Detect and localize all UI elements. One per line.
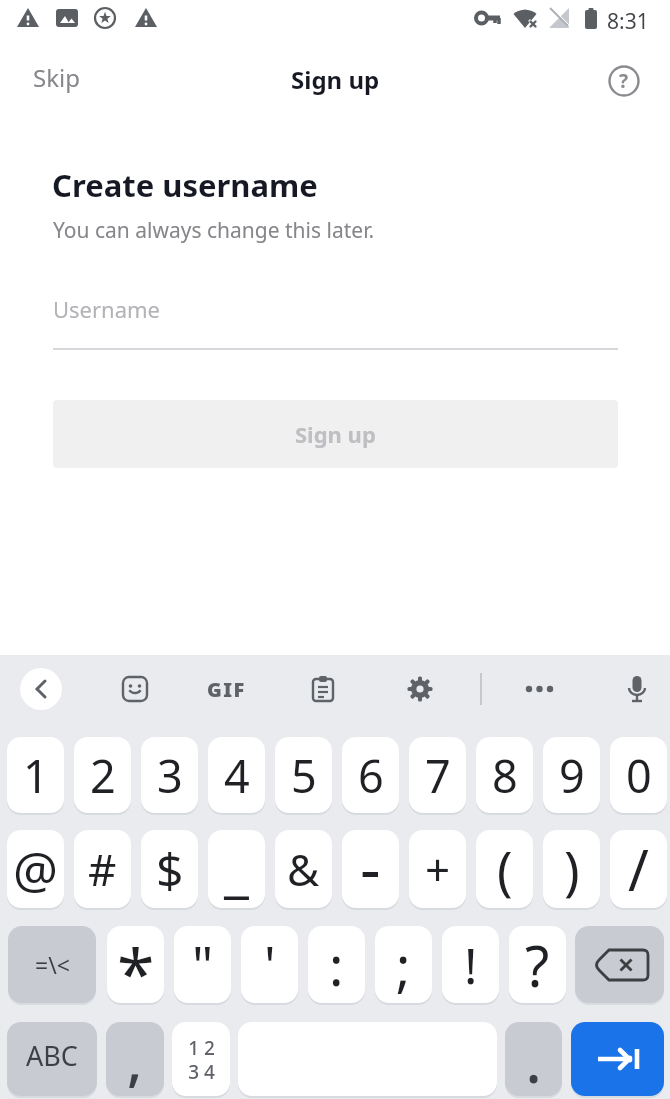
staticText: $: [156, 837, 184, 902]
button[interactable]: Username: [53, 280, 618, 350]
staticText: 8:31: [607, 7, 649, 36]
staticText: !: [464, 931, 478, 999]
staticText: GIF: [207, 676, 246, 703]
staticText: (: [497, 834, 513, 905]
button[interactable]: ': [241, 926, 298, 1003]
staticText: /: [628, 831, 649, 907]
button[interactable]: Skip: [20, 52, 93, 111]
staticText: Skip: [33, 61, 80, 94]
button[interactable]: _: [208, 830, 265, 908]
staticText: ': [264, 929, 276, 1000]
button[interactable]: .: [505, 1022, 562, 1096]
staticText: +: [425, 839, 451, 899]
button[interactable]: +: [409, 830, 466, 908]
staticText: 4: [224, 745, 250, 806]
staticText: Sign up: [291, 63, 380, 96]
button[interactable]: 8: [476, 737, 533, 813]
staticText: _: [224, 831, 249, 907]
staticText: ": [192, 929, 214, 1000]
button[interactable]: ;: [375, 926, 432, 1003]
button[interactable]: [307, 673, 339, 705]
button[interactable]: 9: [543, 737, 600, 813]
staticText: :: [329, 928, 344, 1002]
button[interactable]: ,: [106, 1022, 164, 1096]
button[interactable]: 3: [141, 737, 198, 813]
staticText: 0: [626, 745, 652, 806]
button[interactable]: [571, 1022, 664, 1096]
staticText: ?: [525, 927, 550, 1003]
button[interactable]: ABC: [7, 1022, 97, 1096]
button[interactable]: 7: [409, 737, 466, 813]
staticText: ): [564, 834, 580, 905]
button[interactable]: [575, 926, 664, 1003]
button[interactable]: *: [107, 926, 164, 1003]
button[interactable]: GIF: [203, 673, 249, 705]
button[interactable]: 1 2 3 4: [172, 1022, 230, 1096]
button[interactable]: ): [543, 830, 600, 908]
button[interactable]: [519, 673, 561, 705]
staticText: ABC: [26, 1037, 78, 1074]
button[interactable]: -: [342, 830, 399, 908]
staticText: ;: [396, 928, 411, 1002]
button[interactable]: 0: [610, 737, 667, 813]
staticText: ?: [619, 68, 629, 94]
button[interactable]: (: [476, 830, 533, 908]
button[interactable]: =\<: [8, 926, 96, 1003]
staticText: 6: [358, 745, 384, 806]
staticText: ,: [126, 1022, 144, 1088]
staticText: 7: [425, 745, 451, 806]
staticText: 9: [559, 745, 585, 806]
staticText: #: [88, 839, 117, 899]
staticText: @: [13, 835, 58, 903]
button[interactable]: $: [141, 830, 198, 908]
button[interactable]: Sign up: [53, 400, 618, 468]
button[interactable]: #: [74, 830, 131, 908]
staticText: Username: [53, 294, 161, 324]
staticText: 5: [291, 745, 317, 806]
button[interactable]: [20, 668, 62, 710]
button[interactable]: @: [7, 830, 64, 908]
staticText: &: [287, 839, 320, 899]
button[interactable]: 5: [275, 737, 332, 813]
button[interactable]: 6: [342, 737, 399, 813]
staticText: *: [117, 926, 155, 1003]
button[interactable]: ?: [604, 61, 644, 101]
button[interactable]: /: [610, 830, 667, 908]
button[interactable]: &: [275, 830, 332, 908]
button[interactable]: 2: [74, 737, 131, 813]
button[interactable]: 4: [208, 737, 265, 813]
staticText: =\<: [35, 949, 70, 980]
button[interactable]: 1: [7, 737, 64, 813]
button[interactable]: :: [308, 926, 365, 1003]
staticText: You can always change this later.: [53, 216, 375, 245]
button[interactable]: ?: [509, 926, 566, 1003]
button[interactable]: [119, 673, 151, 705]
staticText: -: [360, 830, 381, 902]
staticText: Create username: [52, 164, 318, 206]
staticText: 1 2 3 4: [188, 1035, 215, 1084]
staticText: 8: [492, 745, 518, 806]
button[interactable]: !: [442, 926, 499, 1003]
staticText: 3: [157, 745, 183, 806]
staticText: Sign up: [295, 419, 376, 449]
button[interactable]: [621, 673, 653, 705]
staticText: 1: [23, 745, 49, 806]
button[interactable]: ": [174, 926, 231, 1003]
staticText: 2: [90, 745, 116, 806]
button[interactable]: [404, 673, 436, 705]
staticText: .: [525, 1022, 543, 1089]
